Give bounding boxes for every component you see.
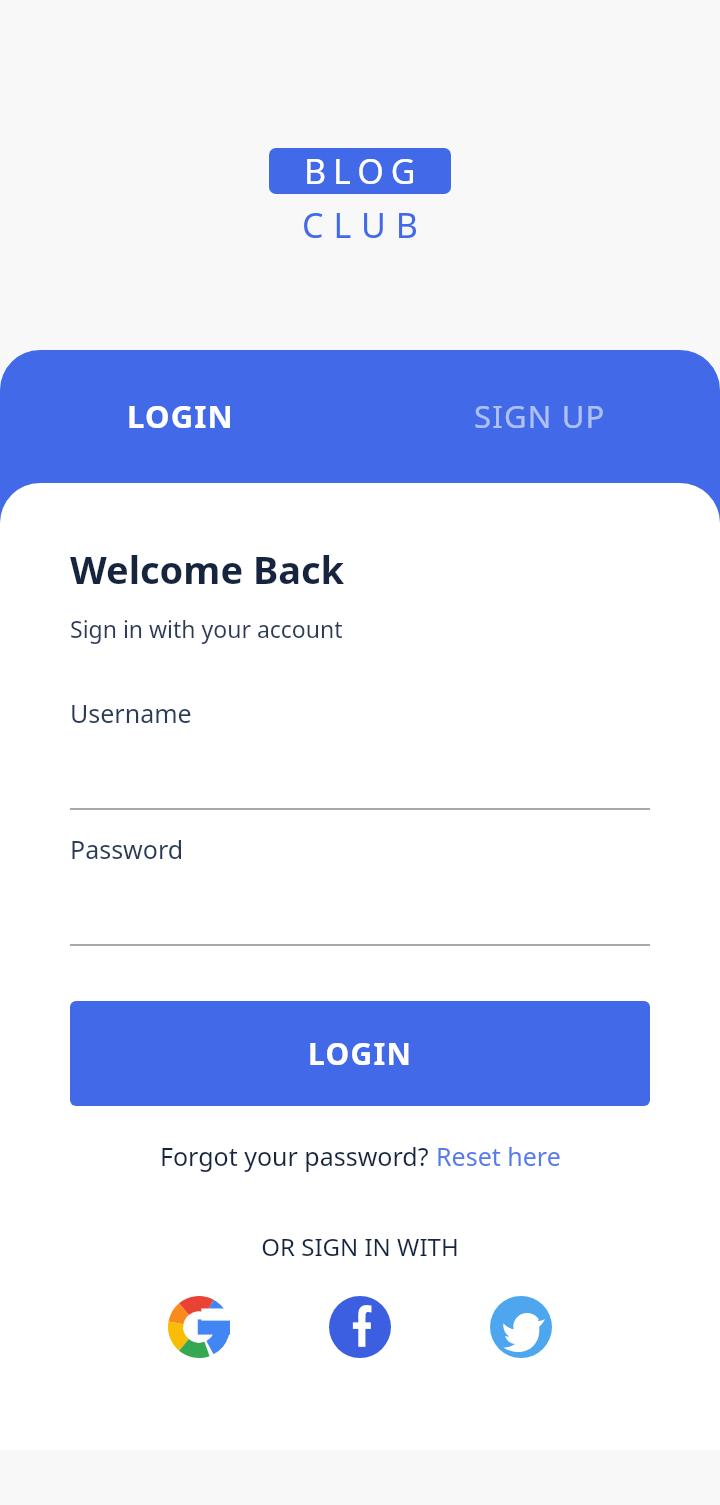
button[interactable]: Reset here bbox=[436, 1139, 561, 1173]
button[interactable]: Password bbox=[70, 832, 650, 946]
button[interactable]: Username bbox=[70, 696, 650, 810]
staticText: Forgot your password? bbox=[160, 1139, 436, 1173]
button[interactable]: Sign in with Facebook bbox=[327, 1294, 393, 1360]
button[interactable]: Sign in with Twitter bbox=[488, 1294, 554, 1360]
staticText: Password bbox=[70, 832, 184, 866]
staticText: SIGN UP bbox=[474, 395, 606, 437]
button[interactable]: Sign in with Google bbox=[166, 1294, 232, 1360]
staticText: LOGIN bbox=[127, 395, 234, 437]
button[interactable]: SIGN UP bbox=[360, 350, 720, 482]
button[interactable]: LOGIN bbox=[0, 350, 360, 482]
staticText: BLOG bbox=[304, 148, 423, 194]
staticText: OR SIGN IN WITH bbox=[70, 1230, 650, 1263]
staticText: Username bbox=[70, 696, 192, 730]
staticText: Welcome Back bbox=[70, 543, 345, 595]
staticText: LOGIN bbox=[308, 1033, 413, 1074]
staticText: Sign in with your account bbox=[70, 613, 343, 644]
button[interactable]: LOGIN bbox=[70, 1001, 650, 1106]
staticText: Reset here bbox=[436, 1139, 561, 1173]
staticText: CLUB bbox=[302, 202, 428, 248]
